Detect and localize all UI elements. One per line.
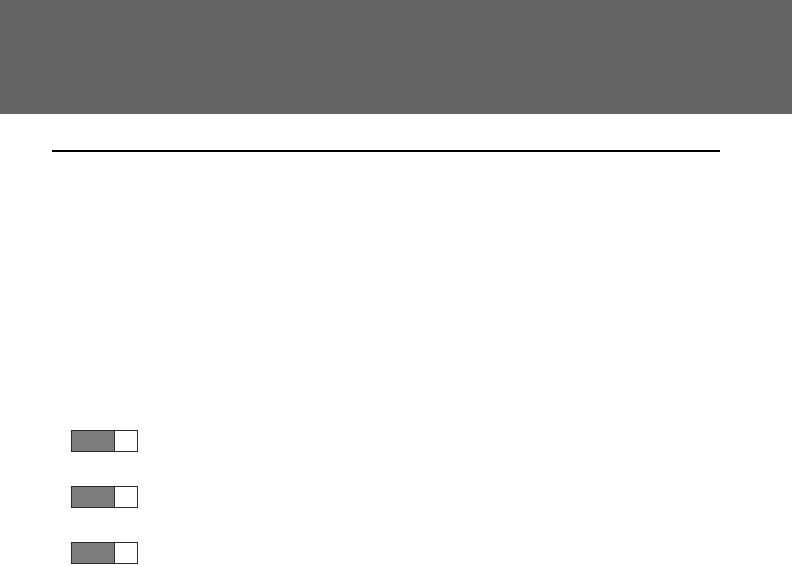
button[interactable]: Meter 3 xyxy=(71,542,138,564)
button[interactable]: Meter 2 xyxy=(71,486,138,508)
button[interactable]: Meter 1 xyxy=(71,430,138,452)
